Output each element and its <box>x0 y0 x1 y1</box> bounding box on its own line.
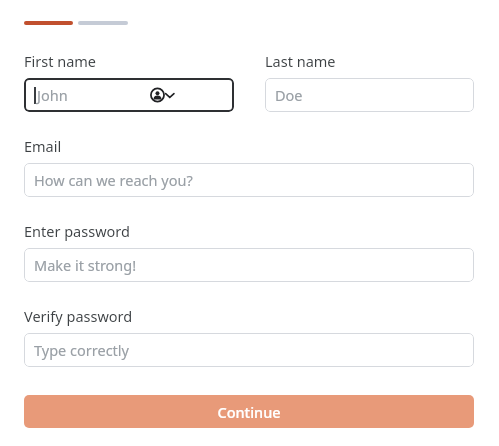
staticText: Verify password <box>24 306 133 326</box>
staticText: Make it strong! <box>34 255 137 275</box>
staticText: Email <box>24 136 62 156</box>
staticText: First name <box>24 51 97 71</box>
staticText: Type correctly <box>34 340 129 360</box>
staticText: Enter password <box>24 221 130 241</box>
button[interactable]: John <box>24 78 234 112</box>
staticText: How can we reach you? <box>34 170 193 190</box>
staticText: Last name <box>265 51 336 71</box>
staticText: Doe <box>275 85 303 105</box>
staticText: John <box>37 85 68 105</box>
button[interactable]: Type correctly <box>24 333 474 367</box>
button[interactable]: Make it strong! <box>24 248 474 282</box>
button[interactable]: How can we reach you? <box>24 163 474 197</box>
other: Choose saved contact <box>149 87 175 103</box>
staticText: Continue <box>217 402 281 422</box>
button[interactable]: Continue <box>24 395 474 428</box>
button[interactable]: Doe <box>265 78 474 112</box>
